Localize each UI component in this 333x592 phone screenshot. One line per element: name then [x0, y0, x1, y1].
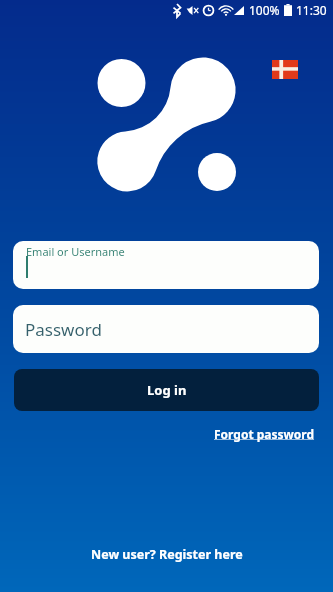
staticText: New user? Register here [91, 546, 243, 563]
button[interactable]: Forgot password [210, 424, 319, 444]
button[interactable]: Change language [272, 60, 298, 79]
staticText: 100% [249, 2, 280, 18]
button[interactable]: New user? Register here [85, 543, 249, 566]
button[interactable]: Log in [14, 369, 319, 411]
staticText: Forgot password [214, 426, 315, 442]
staticText: Log in [147, 381, 187, 399]
button[interactable]: Email or Username [13, 241, 319, 289]
staticText: 11:30 [296, 2, 327, 18]
staticText: Email or Username [26, 244, 125, 259]
button[interactable]: Password [13, 305, 319, 353]
staticText: Password [25, 318, 102, 341]
